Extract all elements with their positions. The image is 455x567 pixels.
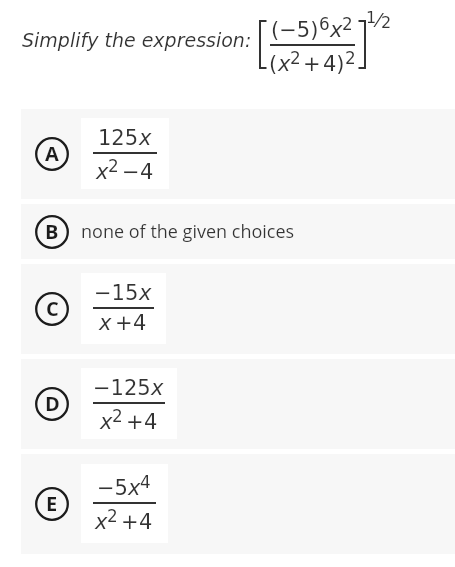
staticText: 2 [345,48,356,68]
staticText: x [93,281,106,305]
staticText: x [330,18,343,42]
staticText: x [96,160,109,184]
staticText: x [128,476,141,500]
staticText: − [122,160,140,184]
button[interactable]: C [21,264,455,354]
staticText: A [45,140,59,167]
staticText: x [139,281,152,305]
staticText: 2 [290,48,301,68]
button[interactable]: A [21,109,455,199]
staticText: x [278,52,291,76]
staticText: + [303,52,321,76]
staticText: 4 [133,311,147,335]
staticText: −5 [97,476,128,500]
staticText: 2 [108,156,119,176]
staticText: 4 [140,160,154,184]
staticText: + [126,410,144,434]
staticText: 6 [319,14,330,34]
staticText: E [46,490,58,517]
staticText: + [115,311,133,335]
staticText: + [121,510,139,534]
staticText: Simplify the expression: [22,29,252,51]
staticText: 1 [366,8,377,27]
staticText: 2 [342,14,353,34]
staticText: 2 [112,406,123,426]
staticText: 4 [140,472,151,492]
staticText: 2 [381,13,392,32]
button[interactable]: B [21,204,455,259]
staticText: 4 [139,510,153,534]
staticText: x [93,472,106,496]
staticText: ( [269,52,278,76]
staticText: (−5) [271,18,319,42]
staticText: x [93,376,106,400]
staticText: x [95,510,108,534]
staticText: D [45,390,60,417]
staticText: x [151,376,164,400]
staticText: x [99,311,112,335]
staticText: x [100,410,113,434]
staticText: 125 [98,126,139,150]
staticText: x [139,126,152,150]
staticText: −15 [94,281,139,305]
staticText: 4) [323,52,345,76]
staticText: 2 [107,506,118,526]
staticText: −125 [93,376,151,400]
staticText: 4 [144,410,158,434]
button[interactable]: D [21,359,455,449]
staticText: B [45,218,59,245]
button[interactable]: E [21,454,455,554]
staticText: ⁄ [377,8,381,31]
staticText: x [93,126,106,150]
staticText: none of the given choices [81,219,295,244]
staticText: x [270,14,283,38]
staticText: C [46,295,59,322]
